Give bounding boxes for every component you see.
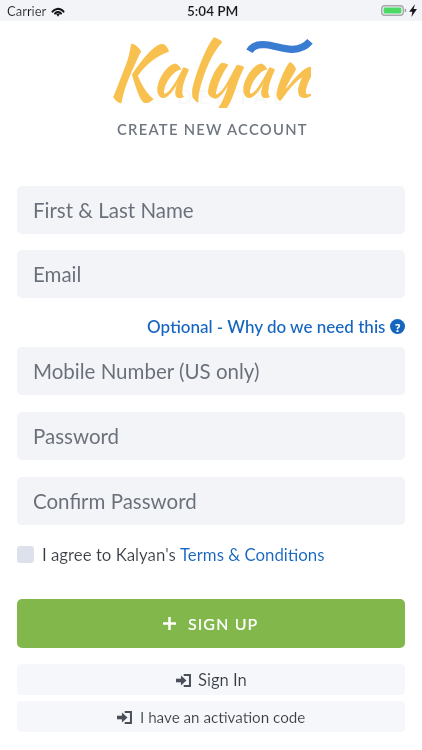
staticText: 5:04 PM — [187, 3, 239, 19]
button[interactable]: Sign In — [17, 664, 405, 695]
staticText: First & Last Name — [33, 198, 194, 223]
button[interactable]: SIGN UP — [17, 599, 405, 648]
staticText: DENTAL — [177, 84, 290, 108]
button[interactable]: Email — [17, 250, 405, 298]
button[interactable]: Mobile Number (US only) — [17, 347, 405, 395]
staticText: Kalyan — [108, 19, 311, 108]
staticText: Password — [33, 424, 120, 449]
button[interactable]: I have an activation code — [17, 701, 405, 732]
button[interactable]: Confirm Password — [17, 477, 405, 525]
staticText: SIGN UP — [188, 614, 259, 633]
staticText: Terms & Conditions — [180, 544, 325, 564]
staticText: Mobile Number (US only) — [33, 359, 260, 384]
staticText: Sign In — [198, 670, 247, 690]
button[interactable]: First & Last Name — [17, 186, 405, 234]
staticText: Confirm Password — [33, 489, 197, 514]
staticText: ? — [395, 320, 401, 334]
staticText: Carrier — [7, 3, 47, 19]
button[interactable]: Optional - Why do we need this — [147, 316, 405, 336]
button[interactable]: Password — [17, 412, 405, 460]
button[interactable]: I agree to Kalyan's — [17, 544, 405, 564]
staticText: I agree to Kalyan's — [42, 544, 180, 564]
staticText: CREATE NEW ACCOUNT — [117, 120, 308, 138]
staticText: Optional - Why do we need this — [147, 316, 386, 336]
staticText: I have an activation code — [140, 708, 306, 726]
staticText: Email — [33, 262, 82, 287]
